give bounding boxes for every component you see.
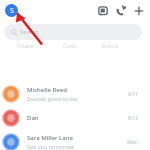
button[interactable]: Sara Miller Lane <box>0 130 150 150</box>
button[interactable]: Calls <box>50 42 90 50</box>
button[interactable]: Chats <box>0 42 50 50</box>
staticText: Calls <box>63 42 77 50</box>
staticText: Status <box>101 42 119 50</box>
staticText: Search <box>20 28 39 36</box>
staticText: Dan <box>27 114 39 122</box>
staticText: Mon <box>118 139 138 146</box>
button[interactable]: Michelle Reed <box>0 82 150 106</box>
staticText: Michelle Reed <box>27 86 67 94</box>
button[interactable]: New conversation <box>132 4 146 18</box>
staticText: Chats <box>17 42 34 50</box>
button[interactable]: Messages <box>96 4 110 18</box>
button[interactable]: Status <box>90 42 130 50</box>
staticText: 9:41 <box>118 91 138 98</box>
staticText: Sara Miller Lane <box>27 134 73 142</box>
staticText: S <box>10 6 14 16</box>
button[interactable]: Calls <box>114 4 128 18</box>
button[interactable]: Search <box>4 24 142 40</box>
staticText: See you tomorrow <box>27 143 75 150</box>
button[interactable]: Dan <box>0 106 150 130</box>
staticText: 8:12 <box>118 115 138 122</box>
button[interactable]: Account <box>5 4 18 17</box>
staticText: Sounds good to me <box>27 95 78 102</box>
